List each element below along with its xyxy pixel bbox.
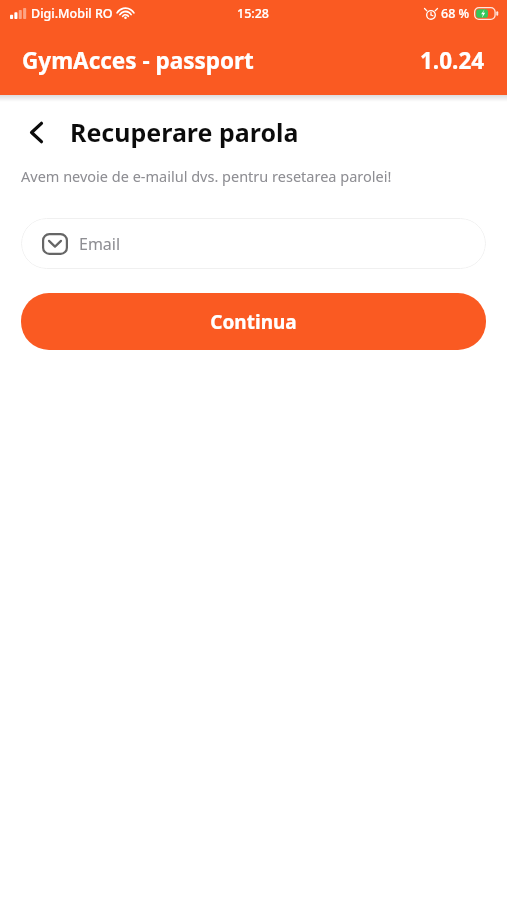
staticText: GymAcces - passport [22,45,254,76]
staticText: Avem nevoie de e-mailul dvs. pentru rese… [21,166,392,186]
button[interactable]: Back [18,114,54,150]
button[interactable]: Email [21,218,486,269]
staticText: Digi.Mobil RO [31,5,113,22]
staticText: Continua [210,309,297,335]
staticText: 1.0.24 [420,45,485,76]
staticText: Recuperare parola [70,115,299,149]
staticText: 15:28 [237,5,270,22]
staticText: Email [79,233,121,255]
button[interactable]: Continua [21,293,486,350]
staticText: 68 % [441,5,470,22]
